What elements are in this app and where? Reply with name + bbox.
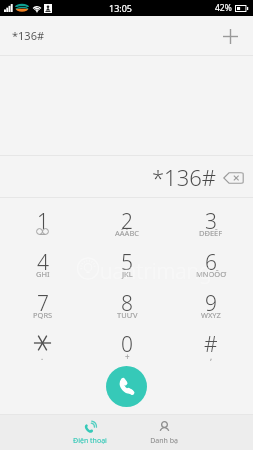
- staticText: +: [125, 351, 130, 362]
- button[interactable]: 1: [0, 199, 85, 240]
- staticText: 7: [37, 289, 49, 318]
- staticText: .: [41, 351, 44, 362]
- button[interactable]: Danh bạ: [138, 415, 190, 450]
- staticText: 0: [121, 330, 133, 359]
- staticText: MNOÔƠ: [196, 269, 227, 279]
- staticText: Danh bạ: [150, 436, 178, 446]
- staticText: *136#: [12, 28, 45, 43]
- button[interactable]: 9: [169, 281, 253, 322]
- staticText: 6: [205, 248, 217, 277]
- button[interactable]: 6: [169, 240, 253, 281]
- staticText: PQRS: [33, 310, 53, 320]
- staticText: JKL: [122, 269, 133, 279]
- staticText: 1: [37, 207, 49, 236]
- button[interactable]: 7: [0, 281, 85, 322]
- button[interactable]: 2: [85, 199, 169, 240]
- staticText: 9: [205, 289, 217, 318]
- staticText: 4: [37, 248, 49, 277]
- button[interactable]: 5: [85, 240, 169, 281]
- staticText: DĐEÊF: [199, 228, 223, 238]
- button[interactable]: 3: [169, 199, 253, 240]
- button[interactable]: Điện thoại: [64, 415, 116, 450]
- button[interactable]: 4: [0, 240, 85, 281]
- staticText: uantrimang: [100, 257, 212, 286]
- staticText: 5: [121, 248, 133, 277]
- button[interactable]: 8: [85, 281, 169, 322]
- staticText: 42%: [215, 2, 232, 14]
- staticText: *136#: [152, 162, 217, 192]
- staticText: 2: [121, 207, 133, 236]
- staticText: 3: [205, 207, 217, 236]
- button[interactable]: #: [169, 322, 253, 363]
- button[interactable]: 0: [85, 322, 169, 363]
- staticText: ,: [210, 351, 213, 362]
- staticText: 8: [121, 289, 133, 318]
- staticText: 13:05: [109, 2, 133, 14]
- button[interactable]: .: [0, 322, 85, 363]
- staticText: #: [204, 330, 218, 359]
- staticText: AÂĂBC: [115, 228, 139, 238]
- button[interactable]: Add contact: [215, 21, 245, 51]
- staticText: GHI: [36, 269, 50, 279]
- staticText: Điện thoại: [73, 436, 107, 446]
- button[interactable]: Backspace: [222, 166, 245, 189]
- staticText: TUƯV: [117, 310, 138, 320]
- staticText: WXYZ: [201, 310, 221, 320]
- button[interactable]: Call: [106, 366, 147, 407]
